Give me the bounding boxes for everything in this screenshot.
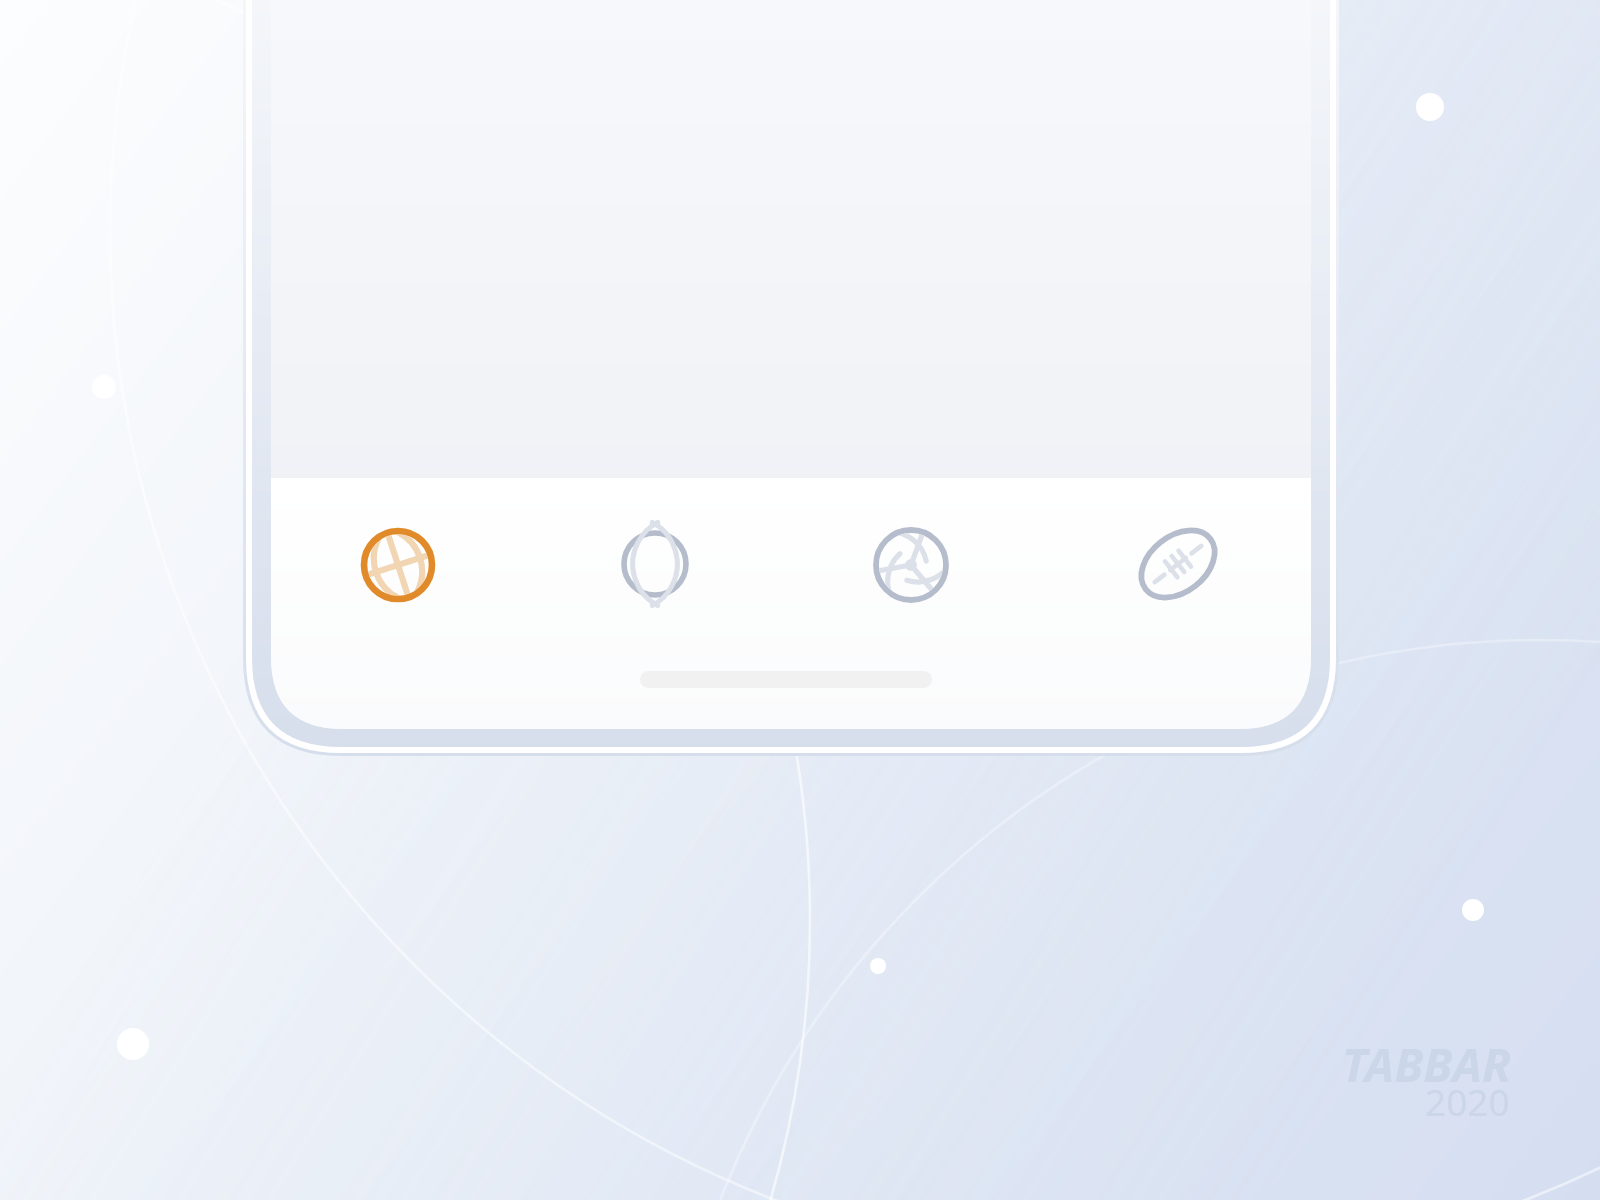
button[interactable]: Baseball tab xyxy=(527,492,783,636)
button[interactable]: Volleyball tab xyxy=(783,493,1039,637)
button[interactable]: Basketball tab, selected xyxy=(270,493,526,637)
button[interactable]: Football tab xyxy=(1050,492,1306,636)
